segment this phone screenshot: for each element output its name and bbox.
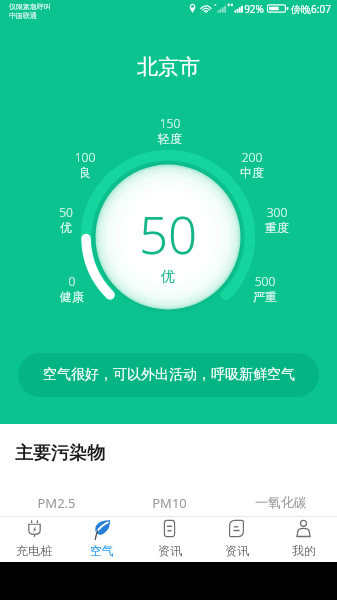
staticText: 100 [60,149,110,165]
button[interactable]: PM2.5 [0,494,113,512]
staticText: 92% [244,2,264,16]
button[interactable]: 空气 [68,516,136,562]
staticText: 0 [47,273,97,289]
staticText: PM2.5 [37,494,76,512]
button[interactable]: 我的 [270,516,337,562]
button[interactable]: PM10 [113,494,225,512]
staticText: 我的 [292,543,316,558]
staticText: 资讯 [158,543,182,558]
staticText: 空气很好，可以外出活动，呼吸新鲜空气 [43,366,295,384]
staticText: 傍晚6:07 [291,2,331,16]
staticText: 500 [240,273,290,289]
button[interactable]: 资讯 [203,516,270,562]
staticText: PM10 [152,494,187,512]
staticText: 充电桩 [16,543,52,558]
staticText: 200 [227,149,277,165]
staticText: 轻度 [145,131,195,146]
staticText: 50 [108,199,228,268]
staticText: 仅限紧急呼叫 [9,2,51,11]
button[interactable]: 资讯 [136,516,203,562]
staticText: 优 [108,268,228,286]
staticText: 良 [60,165,110,180]
staticText: 重度 [252,220,302,235]
staticText: 50 [41,204,91,220]
staticText: 300 [252,204,302,220]
staticText: 健康 [47,289,97,304]
button[interactable]: 充电桩 [0,516,68,562]
staticText: 优 [41,220,91,235]
staticText: 空气 [90,543,114,558]
staticText: 主要污染物 [15,442,105,465]
staticText: 严重 [240,289,290,304]
button[interactable]: 空气很好，可以外出活动，呼吸新鲜空气 [18,353,319,397]
staticText: 中度 [227,165,277,180]
staticText: 一氧化碳 [255,494,307,510]
staticText: 150 [145,115,195,131]
button[interactable]: 一氧化碳 [225,494,337,510]
staticText: 北京市 [0,54,337,80]
staticText: 中国联通 [9,11,37,20]
staticText: 资讯 [225,543,249,558]
